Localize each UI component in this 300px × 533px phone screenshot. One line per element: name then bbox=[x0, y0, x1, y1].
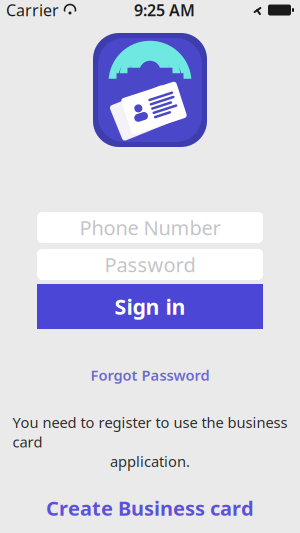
staticText: Phone Number bbox=[79, 214, 220, 241]
staticText: 9:25 AM bbox=[134, 0, 195, 21]
staticText: Forgot Password bbox=[90, 365, 209, 385]
staticText: Password bbox=[104, 251, 195, 278]
staticText: Create Business card bbox=[46, 495, 254, 521]
button[interactable]: Create Business card bbox=[37, 497, 263, 519]
button[interactable]: Sign in bbox=[37, 284, 263, 329]
button[interactable]: Forgot Password bbox=[37, 367, 263, 383]
staticText: Sign in bbox=[114, 292, 185, 321]
staticText: application. bbox=[110, 451, 190, 471]
staticText: Carrier bbox=[6, 0, 59, 21]
staticText: You need to register to use the business… bbox=[12, 413, 287, 452]
